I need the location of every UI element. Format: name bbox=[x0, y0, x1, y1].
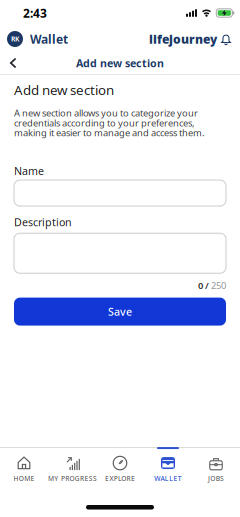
button[interactable]: MY PROGRESS bbox=[48, 445, 96, 491]
staticText: Save bbox=[108, 304, 132, 319]
staticText: Wallet bbox=[30, 31, 68, 47]
button[interactable]: Back bbox=[0, 52, 17, 73]
staticText: 250 bbox=[211, 279, 226, 292]
button[interactable]: Profile bbox=[0, 31, 68, 47]
staticText: Add new section bbox=[76, 56, 164, 70]
staticText: WALLET bbox=[154, 474, 182, 483]
staticText: RK bbox=[11, 35, 19, 43]
button[interactable]: EXPLORE bbox=[96, 445, 144, 491]
button[interactable]: WALLET bbox=[144, 445, 192, 491]
button[interactable]: JOBS bbox=[192, 445, 240, 491]
staticText: 0 / bbox=[198, 279, 209, 292]
staticText: Add new section bbox=[14, 81, 114, 99]
staticText: MY PROGRESS bbox=[48, 474, 97, 483]
button[interactable]: Notifications bbox=[217, 32, 240, 45]
staticText: 2:43 bbox=[23, 5, 47, 21]
staticText: HOME bbox=[14, 474, 34, 483]
staticText: Description bbox=[14, 215, 72, 229]
staticText: JOBS bbox=[208, 474, 224, 483]
staticText: lifejourney bbox=[149, 31, 217, 47]
staticText: Name bbox=[14, 164, 44, 178]
staticText: A new section allows you to categorize y… bbox=[14, 107, 205, 139]
staticText: EXPLORE bbox=[105, 474, 135, 483]
button[interactable]: HOME bbox=[0, 445, 48, 491]
button[interactable]: Save bbox=[14, 298, 226, 326]
